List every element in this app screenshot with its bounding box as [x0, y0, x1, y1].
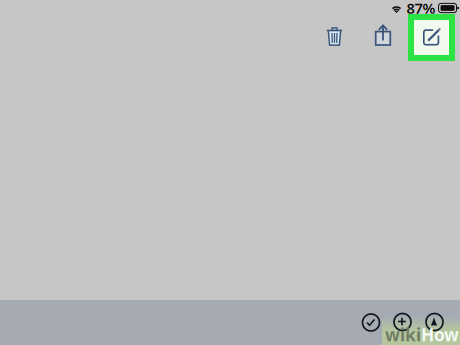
button[interactable]: Navigate [425, 313, 443, 331]
staticText: 87% [406, 0, 435, 18]
button[interactable]: Delete [326, 25, 343, 46]
button[interactable]: Compose [408, 14, 455, 61]
button[interactable]: Add [393, 313, 411, 331]
button[interactable]: Select [362, 313, 380, 331]
button[interactable]: Share [374, 24, 391, 46]
staticText: How [421, 323, 459, 345]
staticText: wiki [385, 323, 421, 345]
